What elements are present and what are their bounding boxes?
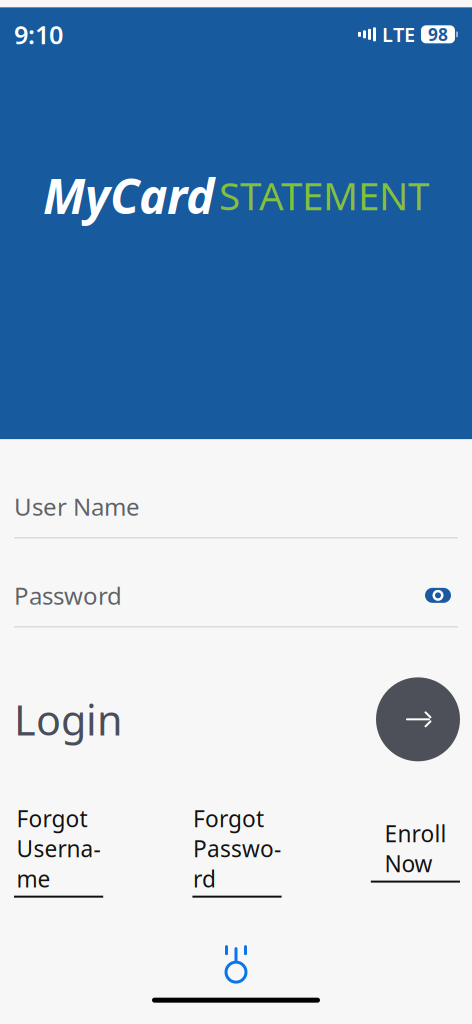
staticText: Forgot Username: [17, 803, 101, 894]
staticText: 9:10: [14, 17, 63, 51]
button[interactable]: Enroll Now: [371, 818, 460, 883]
staticText: MyCard: [43, 163, 215, 227]
staticText: Forgot Password: [193, 803, 281, 894]
button[interactable]: Show password: [418, 580, 458, 610]
staticText: STATEMENT: [219, 170, 429, 221]
button[interactable]: Forgot Username: [14, 803, 103, 898]
staticText: Password: [14, 579, 122, 611]
staticText: Enroll Now: [384, 818, 446, 879]
staticText: 98: [428, 23, 448, 46]
staticText: Login: [14, 692, 123, 747]
button[interactable]: Sign in with Face ID: [205, 928, 267, 990]
staticText: LTE: [382, 21, 415, 48]
staticText: User Name: [14, 490, 140, 522]
button[interactable]: Forgot Password: [192, 803, 282, 898]
button[interactable]: Login: [376, 677, 460, 761]
